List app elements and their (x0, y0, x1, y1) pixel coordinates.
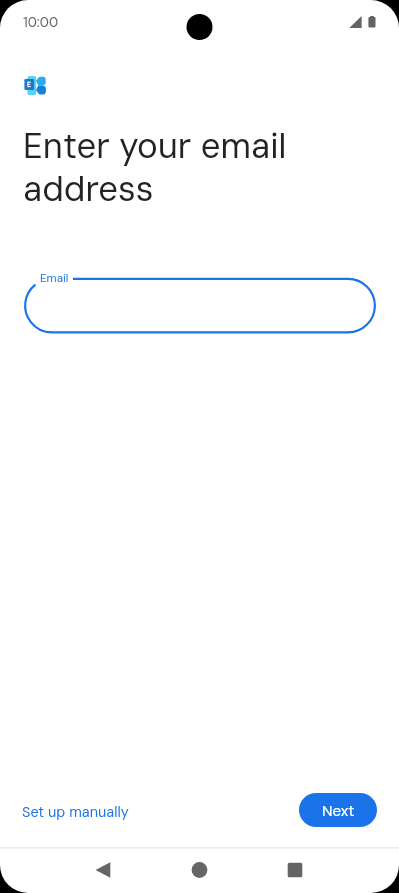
staticText: Next (322, 801, 355, 821)
button[interactable]: Set up manually (10, 796, 141, 829)
staticText: Enter your email address (23, 125, 287, 211)
staticText: 10:00 (23, 13, 59, 31)
button[interactable]: Next (299, 793, 377, 827)
button[interactable]: Home (181, 852, 217, 888)
button[interactable]: Recent apps (277, 852, 313, 888)
button[interactable]: Email (24, 270, 376, 340)
button[interactable]: Back (85, 852, 121, 888)
staticText: Set up manually (22, 803, 129, 822)
staticText: Email (40, 271, 69, 286)
